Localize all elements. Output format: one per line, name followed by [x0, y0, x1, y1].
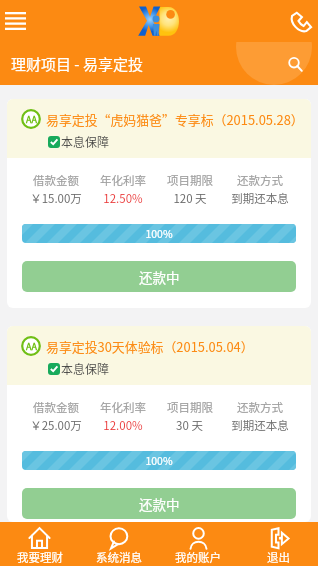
staticText: 还款方式: [237, 172, 283, 189]
staticText: AA: [26, 113, 37, 126]
staticText: 还款中: [139, 494, 180, 514]
staticText: 本息保障: [61, 360, 110, 377]
staticText: 易享定投30天体验标（2015.05.04）: [46, 337, 254, 356]
staticText: 12.50%: [103, 190, 143, 207]
staticText: ￥25.00万: [30, 417, 82, 434]
staticText: ￥15.00万: [30, 190, 82, 207]
staticText: 到期还本息: [231, 417, 289, 434]
button[interactable]: 还款中: [22, 488, 296, 519]
button[interactable]: 系统消息: [79, 522, 158, 566]
staticText: 借款金额: [33, 399, 79, 416]
button[interactable]: AA: [7, 326, 311, 522]
button[interactable]: Menu: [0, 6, 30, 36]
button[interactable]: Search: [280, 49, 310, 79]
button[interactable]: 退出: [238, 522, 318, 566]
staticText: AA: [26, 340, 37, 353]
button[interactable]: Call: [282, 5, 314, 37]
staticText: 理财项目 - 易享定投: [11, 53, 143, 75]
staticText: 系统消息: [96, 549, 142, 566]
staticText: 到期还本息: [231, 190, 289, 207]
button[interactable]: 我的账户: [158, 522, 238, 566]
staticText: 还款中: [139, 267, 180, 287]
staticText: 12.00%: [103, 417, 143, 434]
staticText: 年化利率: [100, 172, 146, 189]
staticText: 年化利率: [100, 399, 146, 416]
staticText: 我要理财: [17, 549, 63, 566]
button[interactable]: 我要理财: [0, 522, 79, 566]
staticText: 项目期限: [167, 172, 213, 189]
button[interactable]: 还款中: [22, 261, 296, 292]
staticText: 还款方式: [237, 399, 283, 416]
staticText: 30 天: [176, 417, 203, 434]
staticText: 项目期限: [167, 399, 213, 416]
staticText: 100%: [22, 226, 296, 241]
button[interactable]: AA: [7, 99, 311, 308]
staticText: 120 天: [173, 190, 207, 207]
staticText: 我的账户: [175, 549, 221, 566]
staticText: 退出: [267, 549, 290, 566]
staticText: 借款金额: [33, 172, 79, 189]
staticText: 本息保障: [61, 133, 110, 150]
staticText: 易享定投“虎妈猫爸”专享标（2015.05.28）: [46, 110, 304, 129]
staticText: 100%: [22, 453, 296, 468]
